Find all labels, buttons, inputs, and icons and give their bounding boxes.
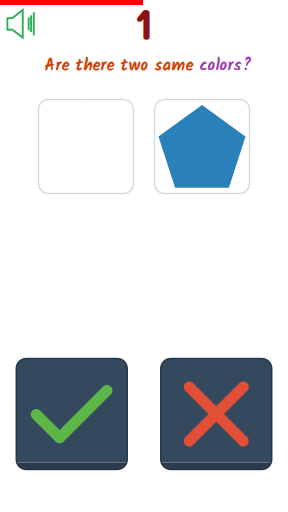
- staticText: Are there two same: [44, 53, 193, 79]
- staticText: 1: [133, 0, 153, 51]
- button[interactable]: Sound: [2, 5, 38, 42]
- staticText: colors?: [199, 53, 251, 79]
- button[interactable]: Yes: [16, 358, 127, 469]
- button[interactable]: No: [161, 358, 272, 469]
